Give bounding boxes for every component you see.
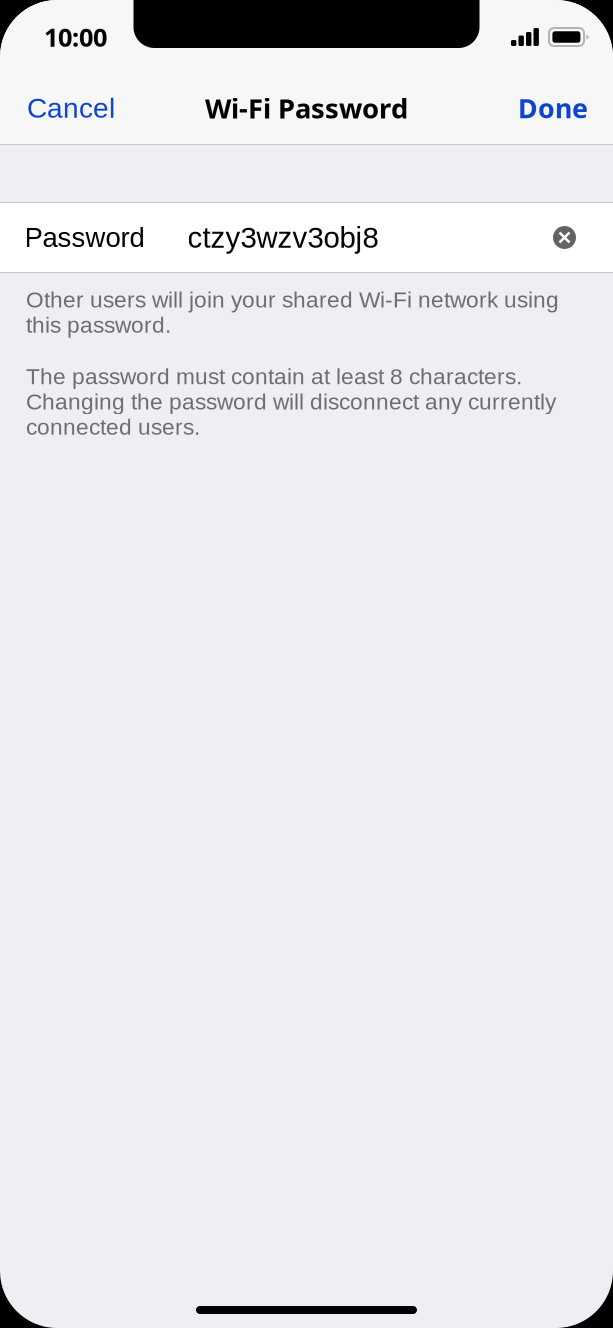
button[interactable]: Password: [24, 202, 553, 273]
staticText: 10:00: [44, 20, 107, 54]
staticText: The password must contain at least 8 cha…: [26, 364, 556, 440]
button[interactable]: Done: [516, 80, 590, 136]
staticText: Done: [518, 90, 588, 126]
staticText: Password: [24, 222, 144, 253]
button[interactable]: Cancel: [25, 82, 117, 134]
staticText: Other users will join your shared Wi-Fi …: [26, 287, 559, 338]
staticText: Cancel: [27, 92, 115, 124]
button[interactable]: Clear text: [553, 226, 576, 249]
staticText: Wi-Fi Password: [205, 89, 408, 127]
staticText: ctzy3wzv3obj8: [187, 221, 378, 254]
